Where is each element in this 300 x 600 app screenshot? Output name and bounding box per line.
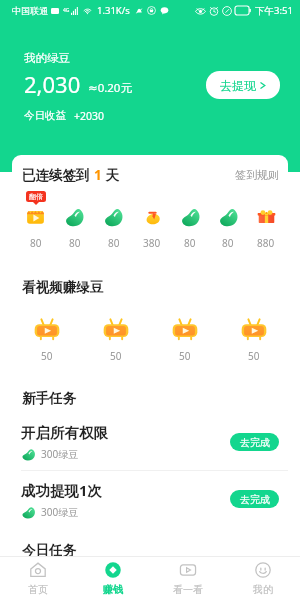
button[interactable]: 去完成	[230, 433, 279, 451]
staticText: 4G	[63, 7, 70, 14]
staticText: 1	[94, 166, 102, 184]
staticText: 签到规则	[235, 168, 279, 182]
staticText: 成功提现1次	[21, 480, 102, 500]
staticText: 50	[248, 349, 260, 363]
button[interactable]: 成功提现1次	[12, 471, 288, 527]
button[interactable]: 80	[209, 191, 247, 250]
staticText: 80	[30, 236, 42, 250]
button[interactable]: 880	[247, 191, 285, 250]
staticText: 80	[184, 236, 196, 250]
button[interactable]: 50	[81, 302, 150, 370]
staticText: 2,030	[24, 69, 81, 99]
button[interactable]: 50	[219, 302, 288, 370]
button[interactable]: 我的	[225, 557, 300, 600]
button[interactable]: 签到规则	[235, 168, 279, 182]
button[interactable]: 看一看	[150, 557, 225, 600]
button[interactable]: 翻倍	[16, 191, 55, 250]
staticText: 300绿豆	[41, 447, 79, 461]
button[interactable]: 80	[171, 191, 209, 250]
staticText: 首页	[28, 583, 48, 596]
staticText: ≈0.20元	[88, 80, 132, 96]
button[interactable]: 380	[133, 191, 171, 250]
staticText: 看视频赚绿豆	[22, 279, 103, 296]
button[interactable]: 去完成	[230, 490, 279, 508]
staticText: 已连续签到	[22, 166, 94, 184]
staticText: 去提现	[220, 78, 256, 93]
button[interactable]: 首页	[0, 557, 75, 600]
button[interactable]: 去提现	[206, 71, 280, 99]
staticText: 50	[41, 349, 53, 363]
button[interactable]: 50	[12, 302, 81, 370]
staticText: 我的绿豆	[24, 51, 70, 65]
staticText: 开启所有权限	[21, 424, 108, 442]
staticText: 80	[222, 236, 234, 250]
button[interactable]: 80	[94, 191, 133, 250]
staticText: 今日任务	[22, 542, 76, 559]
staticText: 300绿豆	[41, 505, 79, 519]
staticText: 赚钱	[103, 583, 123, 596]
staticText: 新手任务	[22, 390, 76, 407]
staticText: 中国联通	[12, 5, 48, 16]
staticText: +2030	[74, 109, 105, 123]
button[interactable]: 开启所有权限	[12, 414, 288, 470]
button[interactable]: 50	[150, 302, 219, 370]
staticText: 80	[108, 236, 120, 250]
staticText: 看一看	[173, 583, 203, 596]
staticText: 下午3:51	[255, 4, 293, 17]
button[interactable]: 赚钱	[75, 557, 150, 600]
staticText: 1.31K/s	[97, 4, 130, 17]
staticText: 翻倍	[29, 192, 43, 201]
staticText: 380	[143, 236, 161, 250]
staticText: 50	[110, 349, 122, 363]
staticText: 天	[102, 166, 120, 184]
staticText: 去完成	[240, 436, 270, 449]
staticText: 80	[69, 236, 81, 250]
staticText: 今日收益	[24, 109, 66, 122]
staticText: 我的	[253, 583, 273, 596]
staticText: 50	[179, 349, 191, 363]
staticText: 880	[257, 236, 275, 250]
button[interactable]: 80	[55, 191, 94, 250]
staticText: 去完成	[240, 493, 270, 506]
